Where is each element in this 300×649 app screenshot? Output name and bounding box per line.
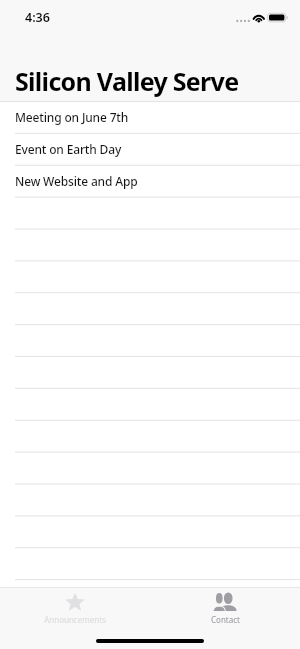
other: Contact (211, 592, 239, 611)
staticText: New Website and App (15, 173, 138, 189)
other: Announcements (65, 592, 85, 611)
button[interactable]: Meeting on June 7th (0, 101, 300, 133)
staticText: 4:36 (25, 9, 50, 26)
staticText: Contact (211, 614, 240, 625)
button[interactable]: Contact (150, 588, 300, 625)
button[interactable]: Announcements (0, 588, 150, 625)
staticText: Event on Earth Day (15, 141, 122, 157)
staticText: Meeting on June 7th (15, 109, 129, 125)
staticText: Announcements (44, 614, 106, 625)
button[interactable]: Event on Earth Day (0, 133, 300, 165)
staticText: Silicon Valley Serve (15, 64, 239, 98)
button[interactable]: New Website and App (0, 165, 300, 197)
